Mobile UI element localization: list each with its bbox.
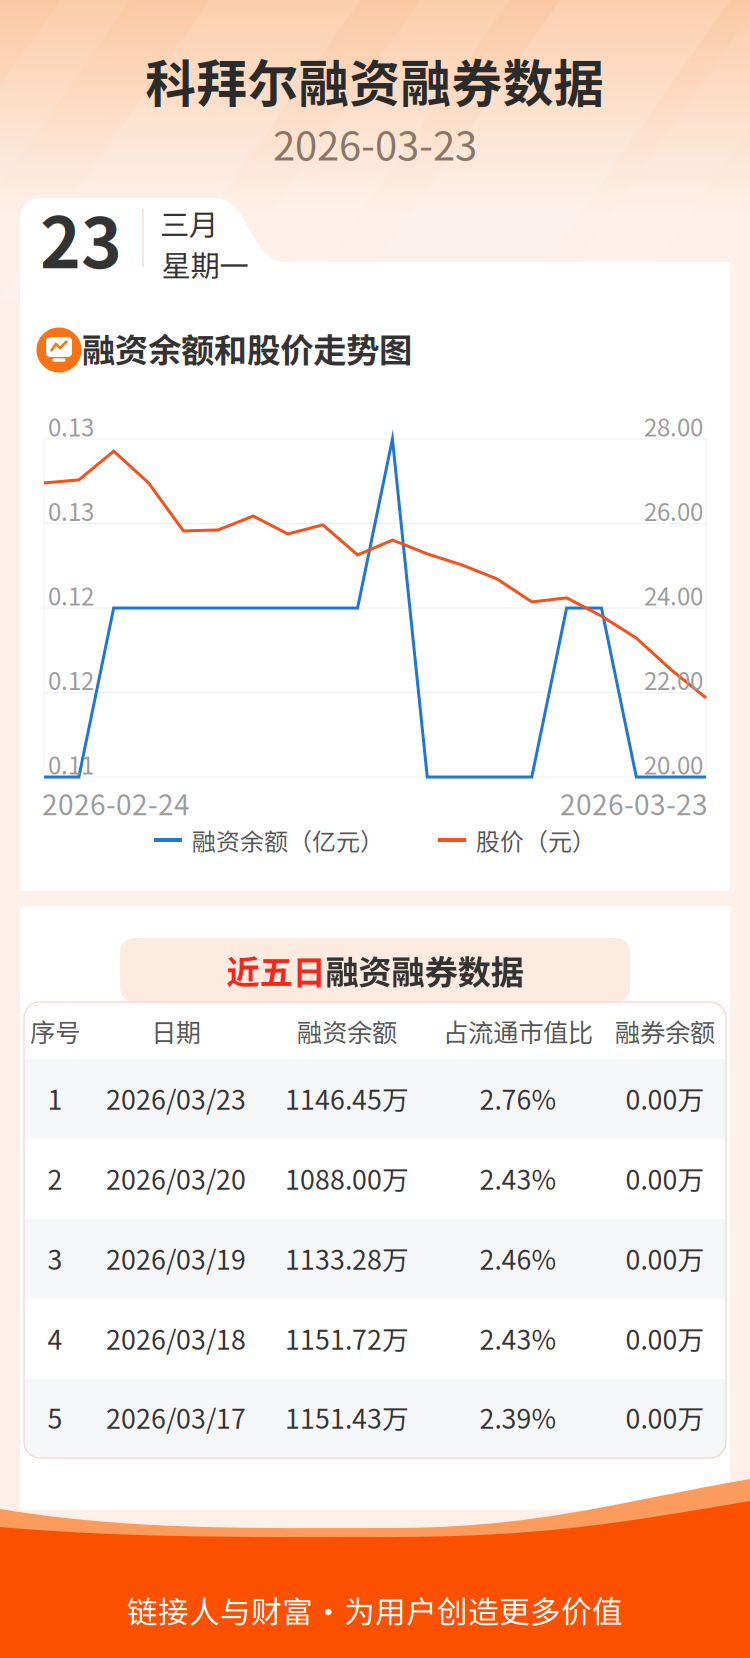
staticText: 股价（元） [476,823,596,857]
staticText: 0.00万 [625,1239,704,1277]
staticText: 融资余额 [297,1013,397,1049]
staticText: 2.43% [479,1159,556,1197]
staticText: 2026-02-24 [42,783,190,823]
staticText: 0.00万 [625,1079,704,1117]
staticText: 融资余额和股价走势图 [82,324,412,372]
staticText: 3 [47,1239,62,1277]
staticText: 0.00万 [625,1159,704,1197]
staticText: 0.12 [48,662,94,697]
staticText: 0.00万 [625,1398,704,1436]
staticText: 0.00万 [625,1319,704,1357]
staticText: 2.43% [479,1319,556,1357]
staticText: 融券余额 [615,1013,715,1049]
staticText: 日期 [151,1013,201,1049]
staticText: 融资融券数据 [325,946,523,994]
staticText: 序号 [30,1013,80,1049]
staticText: 链接人与财富·为用户创造更多价值 [127,1588,623,1632]
staticText: 0.12 [48,578,94,612]
staticText: 1151.43万 [285,1398,409,1436]
staticText: 24.00 [644,578,703,612]
staticText: 2026/03/17 [106,1398,246,1436]
staticText: 2 [47,1159,62,1197]
staticText: 2026/03/19 [106,1239,246,1277]
staticText: 5 [47,1398,62,1436]
staticText: 1088.00万 [285,1159,409,1197]
staticText: 科拜尔融资融券数据 [145,43,604,117]
staticText: 4 [47,1319,62,1357]
staticText: 融资余额（亿元） [192,823,384,857]
staticText: 26.00 [644,493,703,528]
staticText: 22.00 [644,662,703,697]
staticText: 2.46% [479,1239,556,1277]
staticText: 2026-03-23 [273,114,477,172]
staticText: 0.11 [48,747,94,781]
staticText: 2026/03/18 [106,1319,246,1357]
staticText: 占流通市值比 [443,1013,593,1049]
staticText: 23 [40,188,122,288]
staticText: 0.13 [48,409,94,443]
staticText: 2.76% [479,1079,556,1117]
staticText: 近五日 [226,946,325,994]
staticText: 2.39% [479,1398,556,1436]
staticText: 20.00 [644,747,703,781]
staticText: 三月 [160,202,218,244]
staticText: 1 [47,1079,62,1117]
staticText: 2026/03/20 [106,1159,246,1197]
staticText: 2026-03-23 [560,783,708,823]
staticText: 星期一 [161,243,248,285]
staticText: 1146.45万 [285,1079,409,1117]
staticText: 1151.72万 [285,1319,409,1357]
staticText: 1133.28万 [285,1239,409,1277]
staticText: 2026/03/23 [106,1079,246,1117]
staticText: 28.00 [644,409,703,443]
staticText: 0.13 [48,493,94,528]
